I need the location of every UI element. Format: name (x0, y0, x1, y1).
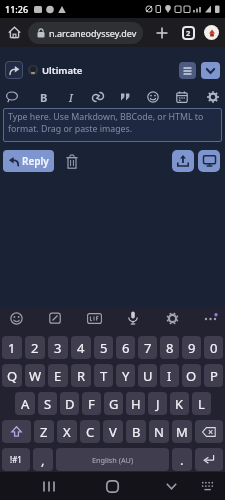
button[interactable]: 5 (94, 336, 113, 359)
button[interactable] (65, 152, 79, 170)
staticText: W (29, 367, 42, 385)
button[interactable]: W (25, 364, 45, 387)
staticText: V (109, 423, 117, 441)
button[interactable]: V (103, 420, 123, 443)
button[interactable]: D (60, 392, 79, 415)
button[interactable]: , (33, 448, 53, 471)
button[interactable]: . (172, 448, 192, 471)
staticText: G (109, 395, 119, 413)
button[interactable]: I (160, 364, 179, 387)
button[interactable]: Q (2, 364, 22, 387)
button[interactable] (201, 62, 220, 79)
button[interactable]: R (71, 364, 91, 387)
staticText: Q (7, 367, 18, 385)
button[interactable]: P (204, 364, 223, 387)
button[interactable]: U (138, 364, 157, 387)
button[interactable]: Reply (3, 150, 54, 172)
staticText: O (186, 367, 197, 385)
button[interactable] (172, 150, 194, 172)
staticText: L (198, 395, 205, 413)
button[interactable]: F (82, 392, 101, 415)
button[interactable]: 1 (2, 336, 22, 359)
button[interactable]: X (57, 420, 77, 443)
button[interactable] (40, 477, 58, 495)
button[interactable]: C (80, 420, 100, 443)
button[interactable] (9, 311, 23, 325)
button[interactable]: H (126, 392, 145, 415)
button[interactable] (198, 150, 220, 172)
button[interactable] (116, 88, 134, 106)
button[interactable] (204, 311, 218, 325)
staticText: T (100, 367, 108, 385)
button[interactable] (2, 420, 31, 443)
staticText: K (175, 395, 184, 413)
button[interactable] (5, 61, 23, 79)
button[interactable] (165, 311, 179, 325)
button[interactable] (89, 88, 107, 106)
button[interactable]: O (182, 364, 201, 387)
button[interactable]: 9 (182, 336, 201, 359)
staticText: Type here. Use Markdown, BBCode, or HTML… (8, 111, 204, 135)
button[interactable] (7, 25, 22, 40)
staticText: I (69, 90, 73, 105)
button[interactable]: E (48, 364, 68, 387)
staticText: E (54, 367, 62, 385)
button[interactable] (162, 477, 180, 495)
button[interactable]: 3 (48, 336, 68, 359)
button[interactable]: Z (34, 420, 54, 443)
button[interactable]: English (AU) (56, 448, 169, 471)
button[interactable] (3, 88, 21, 106)
button[interactable]: I (62, 88, 80, 106)
button[interactable]: A (15, 392, 35, 415)
staticText: Ultimate (42, 64, 83, 77)
staticText: 6 (122, 339, 130, 357)
button[interactable] (103, 477, 121, 495)
button[interactable]: Y (116, 364, 135, 387)
staticText: 9 (188, 339, 196, 357)
button[interactable] (48, 311, 62, 325)
button[interactable]: !#1 (2, 448, 30, 471)
staticText: X (63, 423, 71, 441)
staticText: F (88, 395, 95, 413)
button[interactable]: G (104, 392, 123, 415)
button[interactable]: B (126, 420, 146, 443)
staticText: H (131, 395, 141, 413)
staticText: N (154, 423, 164, 441)
button[interactable] (204, 25, 219, 40)
button[interactable]: L (192, 392, 211, 415)
staticText: 2 (31, 339, 39, 357)
staticText: U (143, 367, 153, 385)
button[interactable]: Type here. Use Markdown, BBCode, or HTML… (3, 108, 222, 142)
button[interactable] (173, 88, 191, 106)
button[interactable] (155, 26, 169, 40)
staticText: C (86, 423, 95, 441)
button[interactable]: 7 (138, 336, 157, 359)
button[interactable] (198, 477, 216, 495)
button[interactable]: 0 (204, 336, 223, 359)
button[interactable]: M (172, 420, 192, 443)
button[interactable]: K (170, 392, 189, 415)
button[interactable] (144, 88, 162, 106)
staticText: 8 (166, 339, 174, 357)
button[interactable]: 8 (160, 336, 179, 359)
button[interactable] (195, 420, 223, 443)
button[interactable] (195, 448, 223, 471)
button[interactable]: J (148, 392, 167, 415)
button[interactable] (126, 311, 140, 325)
button[interactable] (179, 62, 196, 79)
button[interactable]: N (149, 420, 169, 443)
button[interactable]: T (94, 364, 113, 387)
button[interactable]: B (35, 88, 53, 106)
button[interactable]: 6 (116, 336, 135, 359)
button[interactable] (204, 88, 222, 106)
button[interactable]: 4 (71, 336, 91, 359)
button[interactable]: n.arcaneodyssey.dev (28, 22, 143, 44)
button[interactable]: 2 (182, 26, 195, 40)
staticText: 7 (144, 339, 152, 357)
button[interactable] (87, 311, 101, 325)
staticText: 11:26 (5, 3, 29, 15)
button[interactable]: 2 (25, 336, 45, 359)
staticText: M (176, 423, 188, 441)
button[interactable]: S (38, 392, 57, 415)
staticText: D (65, 395, 75, 413)
